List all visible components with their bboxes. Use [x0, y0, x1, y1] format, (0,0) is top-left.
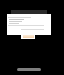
button[interactable]: Home [17, 68, 41, 71]
